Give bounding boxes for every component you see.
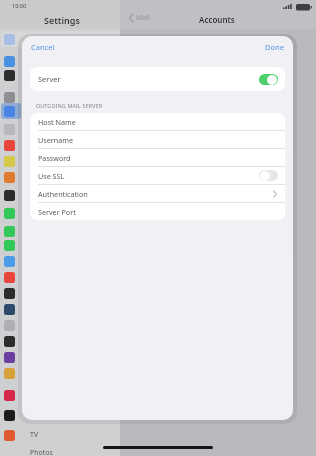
button[interactable]: Host Name [30,113,285,130]
staticText: Cancel [31,42,55,52]
staticText: 10:00 [12,2,27,9]
staticText: Accounts [199,14,235,25]
button[interactable]: Use SSL [30,166,285,184]
staticText: Server Port [38,207,76,217]
staticText: Settings [44,14,80,26]
button[interactable]: Toggle on [259,74,278,85]
button[interactable]: Toggle off [259,170,278,181]
staticText: Server [38,74,61,84]
staticText: TV [30,430,39,440]
staticText: Password [38,153,71,163]
button[interactable]: Mail [129,13,150,23]
button[interactable]: Done [262,40,287,54]
staticText: Mail [136,13,150,23]
button[interactable]: Password [30,148,285,166]
staticText: Username [38,135,73,145]
staticText: OUTGOING MAIL SERVER [36,102,103,109]
staticText: Host Name [38,117,76,127]
staticText: Use SSL [38,171,65,181]
button[interactable]: Cancel [28,40,58,54]
button[interactable]: Server [30,67,285,91]
button[interactable]: Authentication [30,184,285,202]
staticText: Done [265,42,284,52]
staticText: Authentication [38,189,88,199]
button[interactable]: Username [30,130,285,148]
button[interactable]: Server Port [30,202,285,220]
staticText: Photos [30,448,53,456]
